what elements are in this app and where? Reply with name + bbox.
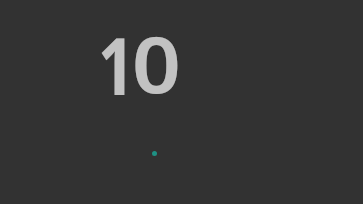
staticText: 0	[132, 10, 181, 116]
staticText: 1	[98, 10, 135, 118]
button[interactable]: Status indicator	[152, 151, 157, 156]
